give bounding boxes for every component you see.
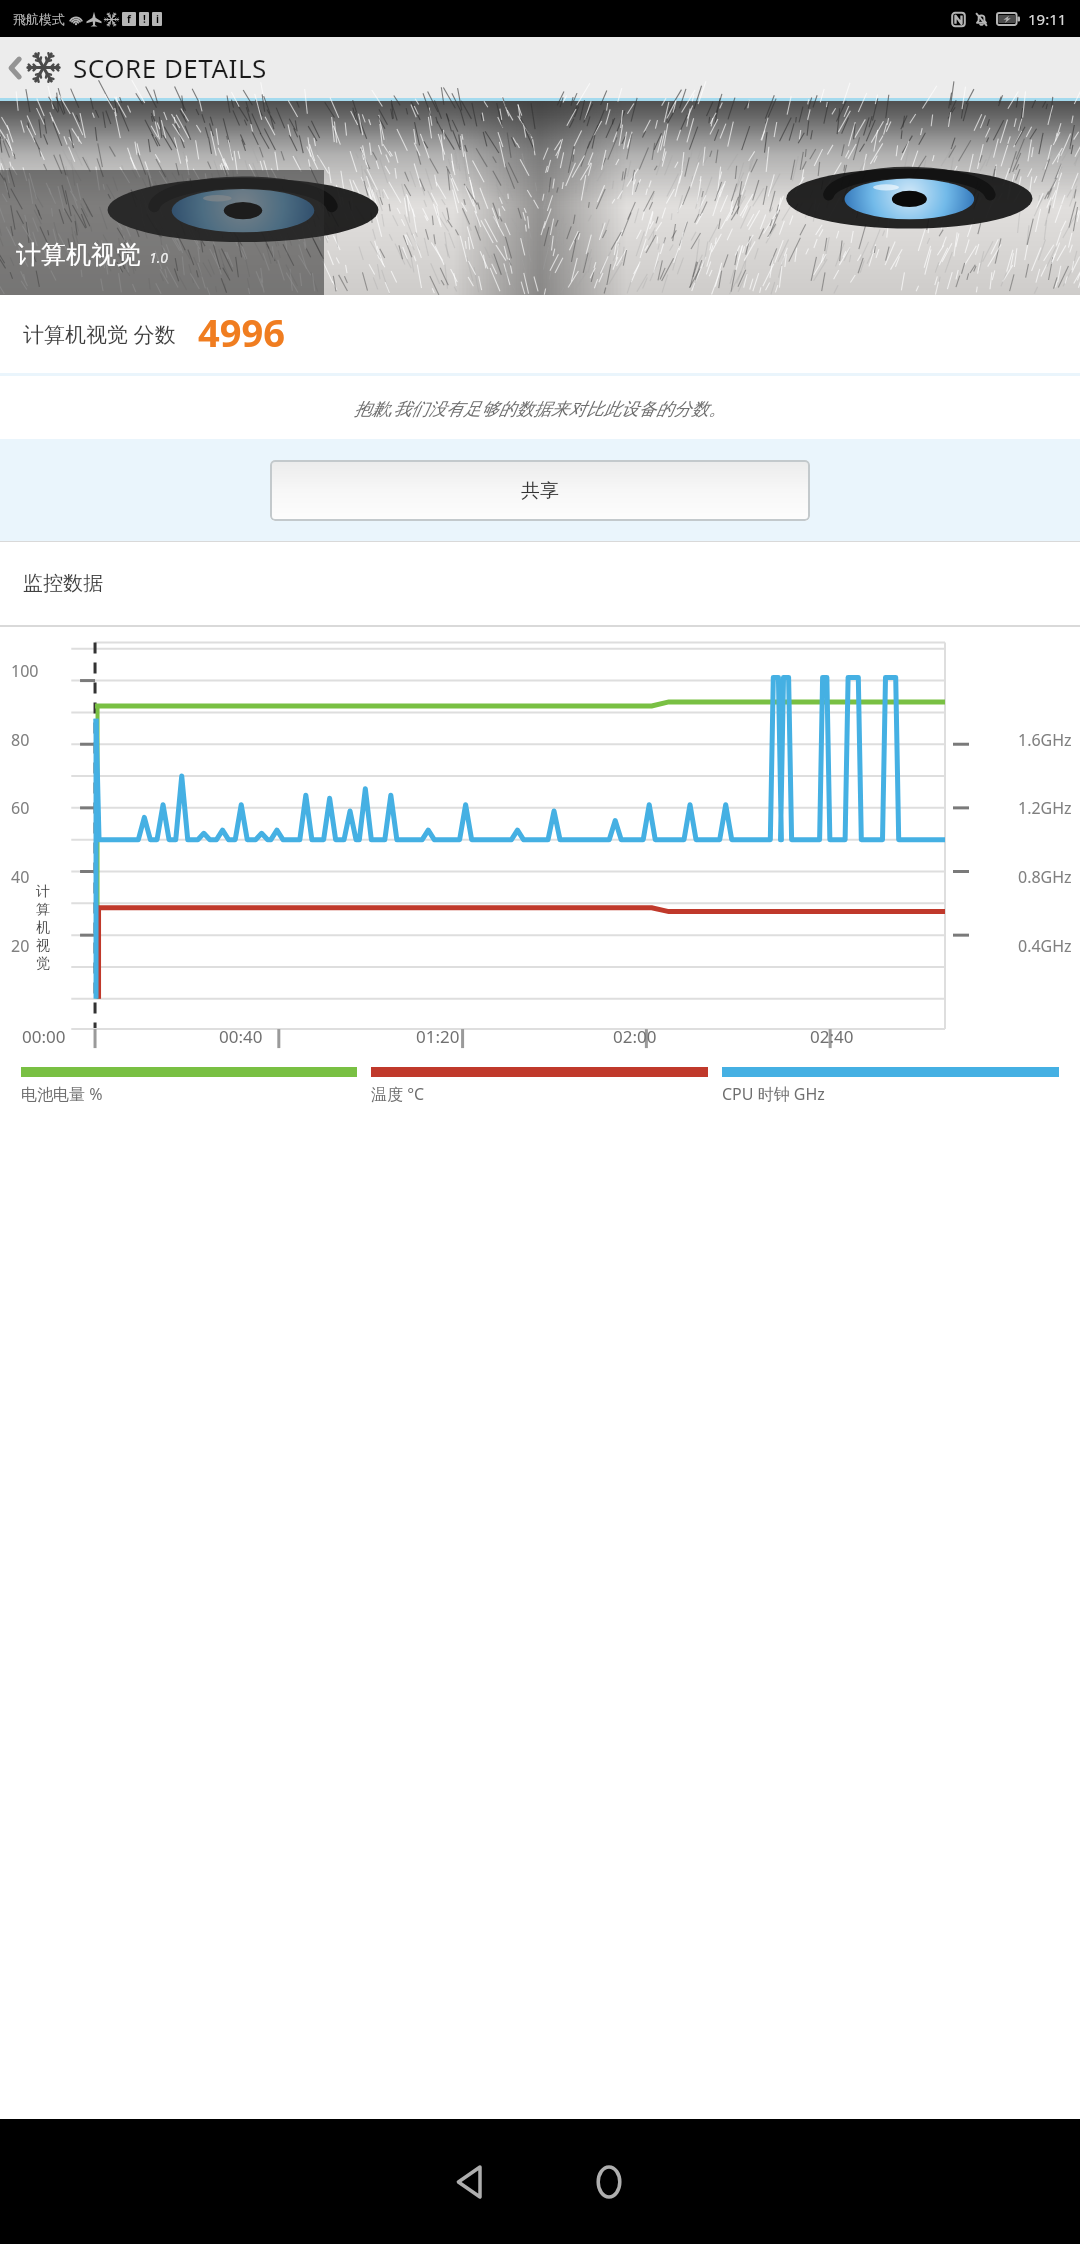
staticText: 机 bbox=[36, 919, 50, 937]
staticText: 0.8GHz bbox=[1018, 866, 1072, 888]
staticText: 计算机视觉 bbox=[16, 239, 141, 270]
staticText: i bbox=[156, 12, 159, 26]
staticText: SCORE DETAILS bbox=[73, 50, 267, 85]
staticText: 共享 bbox=[521, 479, 559, 503]
staticText: 1.6GHz bbox=[1018, 729, 1072, 751]
staticText: 02:40 bbox=[810, 1025, 854, 1048]
staticText: 02:00 bbox=[613, 1025, 657, 1048]
staticText: 飛航模式 bbox=[13, 11, 65, 27]
staticText: 00:00 bbox=[22, 1025, 66, 1048]
button[interactable]: 共享 bbox=[270, 460, 810, 521]
staticText: 1.0 bbox=[149, 248, 169, 267]
staticText: ! bbox=[143, 12, 146, 26]
staticText: 计 bbox=[36, 883, 50, 901]
staticText: 计算机视觉 分数 bbox=[23, 320, 176, 349]
staticText: 电池电量 % bbox=[21, 1083, 103, 1105]
staticText: 监控数据 bbox=[23, 571, 103, 596]
staticText: 100 bbox=[11, 660, 39, 682]
button[interactable]: Back bbox=[0, 50, 279, 85]
button[interactable]: 温度 °C bbox=[371, 1067, 708, 1105]
button[interactable]: Home bbox=[577, 2150, 641, 2214]
button[interactable]: 电池电量 % bbox=[21, 1067, 357, 1105]
staticText: 60 bbox=[11, 797, 30, 819]
staticText: 视 bbox=[36, 937, 50, 955]
staticText: 00:40 bbox=[219, 1025, 263, 1048]
staticText: 01:20 bbox=[416, 1025, 460, 1048]
staticText: 1.2GHz bbox=[1018, 797, 1072, 819]
staticText: 算 bbox=[36, 901, 50, 919]
button[interactable]: CPU 时钟 GHz bbox=[722, 1067, 1059, 1105]
staticText: 19:11 bbox=[1028, 9, 1067, 29]
staticText: 温度 °C bbox=[371, 1083, 425, 1105]
button[interactable]: Back bbox=[439, 2150, 503, 2214]
staticText: 20 bbox=[11, 935, 30, 957]
staticText: f bbox=[127, 12, 131, 26]
staticText: 0.4GHz bbox=[1018, 935, 1072, 957]
staticText: 抱歉,我们没有足够的数据来对比此设备的分数。 bbox=[354, 396, 726, 420]
staticText: 80 bbox=[11, 729, 30, 751]
staticText: CPU 时钟 GHz bbox=[722, 1083, 825, 1105]
staticText: 觉 bbox=[36, 955, 50, 973]
staticText: 4996 bbox=[198, 306, 285, 358]
staticText: 40 bbox=[11, 866, 30, 888]
